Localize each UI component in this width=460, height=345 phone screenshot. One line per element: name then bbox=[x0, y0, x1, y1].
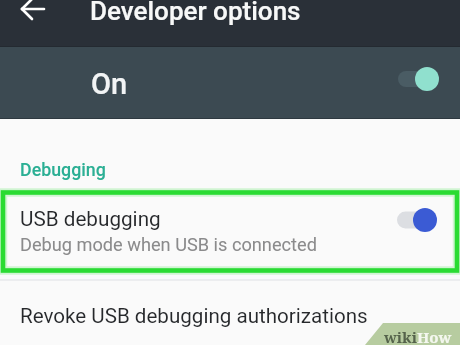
button[interactable]: Back bbox=[11, 0, 55, 31]
button[interactable]: On bbox=[0, 47, 460, 119]
staticText: USB debugging bbox=[20, 207, 161, 231]
staticText: How bbox=[417, 327, 452, 345]
staticText: Revoke USB debugging authorizations bbox=[20, 304, 368, 328]
button[interactable]: USB debugging bbox=[0, 194, 460, 268]
button[interactable]: Developer options toggle bbox=[394, 66, 444, 92]
staticText: Debugging bbox=[20, 159, 106, 180]
staticText: Debug mode when USB is connected bbox=[20, 234, 317, 255]
button[interactable]: Revoke USB debugging authorizations bbox=[0, 284, 460, 345]
button[interactable]: USB debugging toggle bbox=[393, 207, 443, 233]
staticText: wiki bbox=[384, 327, 417, 345]
staticText: On bbox=[91, 67, 128, 101]
staticText: Developer options bbox=[90, 0, 301, 26]
